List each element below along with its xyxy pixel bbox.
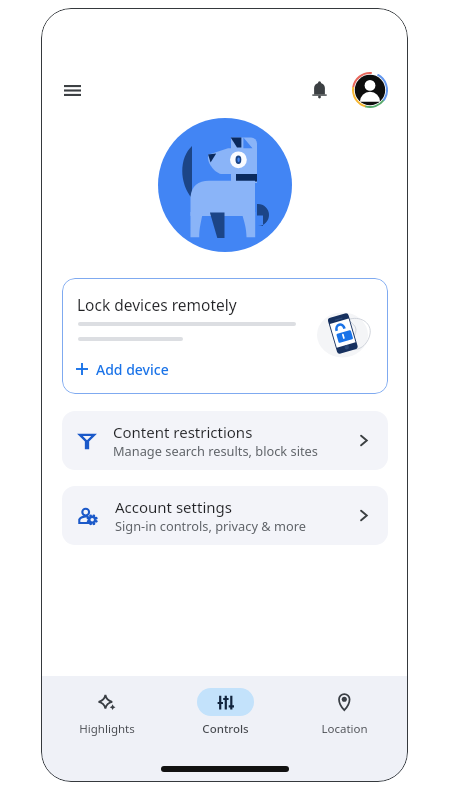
button[interactable]: Notifications xyxy=(297,68,341,112)
button[interactable]: Account settings xyxy=(62,486,388,545)
staticText: Lock devices remotely xyxy=(77,294,237,315)
staticText: Account settings xyxy=(115,497,232,517)
button[interactable]: Highlights xyxy=(71,688,143,737)
staticText: Add device xyxy=(96,360,169,379)
button[interactable]: Menu xyxy=(50,68,94,112)
button[interactable]: Add device xyxy=(72,359,173,379)
staticText: Controls xyxy=(202,721,249,737)
staticText: Location xyxy=(321,721,368,737)
button[interactable]: Content restrictions xyxy=(62,411,388,470)
button[interactable]: Lock devices remotely xyxy=(62,278,388,394)
staticText: Sign-in controls, privacy & more xyxy=(115,517,306,534)
staticText: Highlights xyxy=(79,721,135,737)
staticText: Manage search results, block sites xyxy=(113,442,318,459)
button[interactable]: Controls xyxy=(189,688,261,737)
staticText: Content restrictions xyxy=(113,422,253,442)
button[interactable]: Location xyxy=(308,688,380,737)
button[interactable]: Account xyxy=(349,69,390,110)
